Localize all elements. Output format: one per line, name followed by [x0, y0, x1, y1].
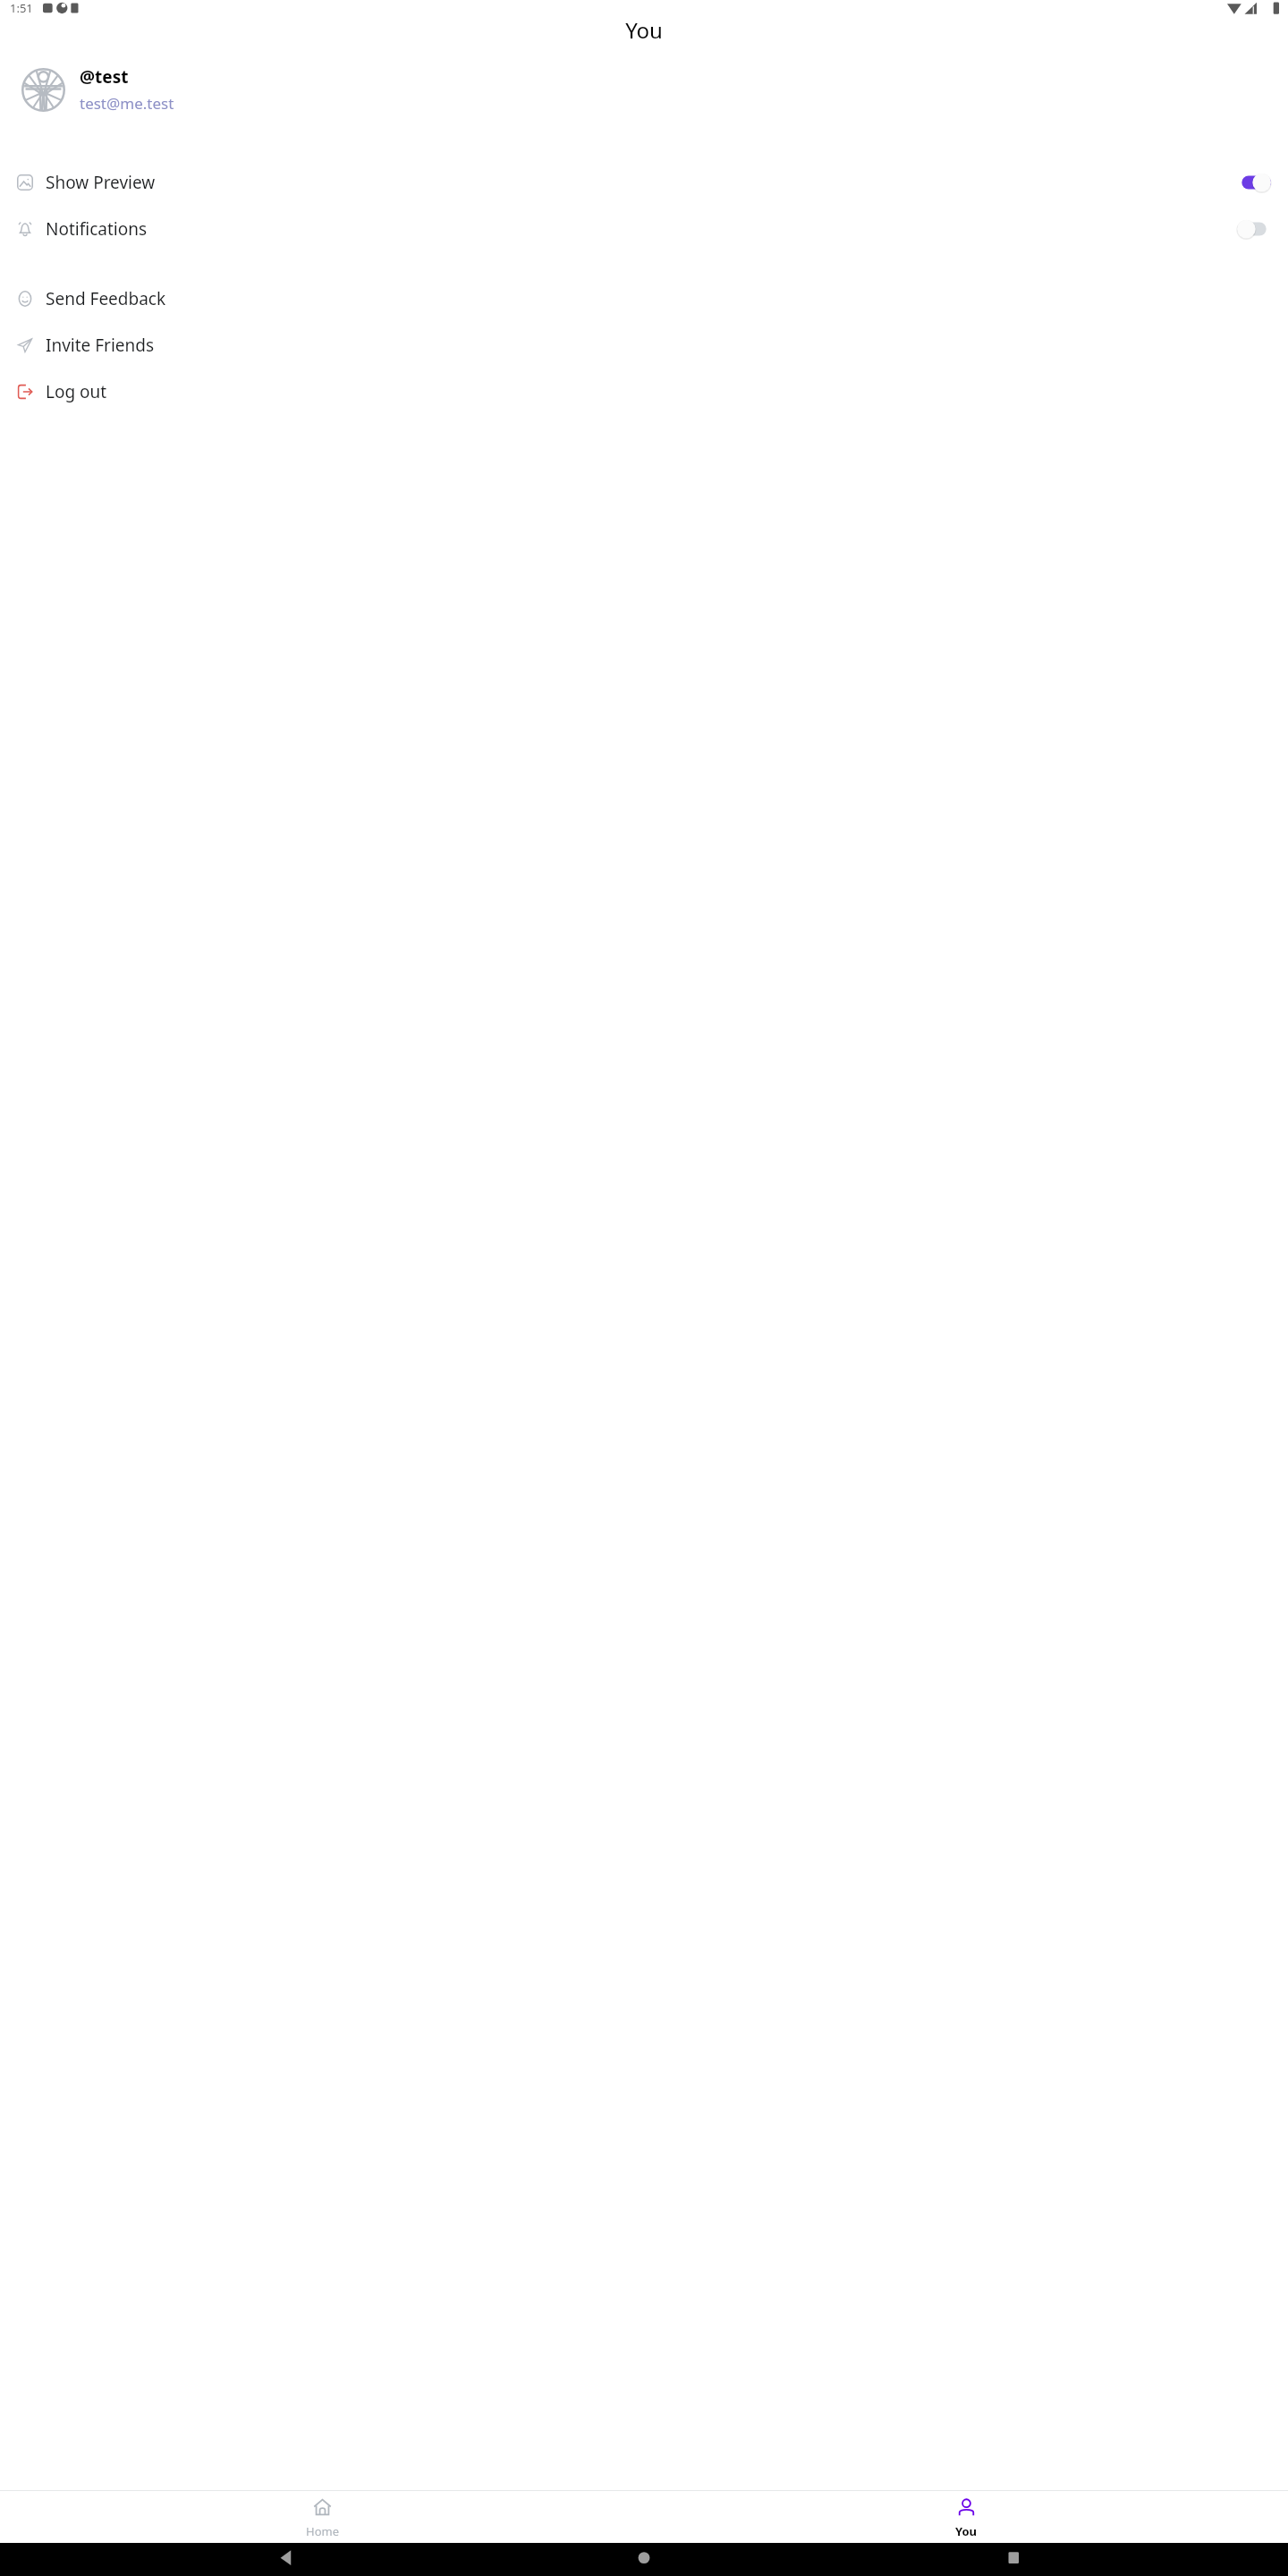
- staticText: You: [955, 2523, 978, 2539]
- button[interactable]: @test: [0, 58, 1288, 121]
- button[interactable]: Show preview: [0, 159, 1288, 206]
- button[interactable]: Home: [0, 2491, 644, 2543]
- other: Log out: [17, 384, 33, 400]
- staticText: Send Feedback: [46, 287, 166, 310]
- staticText: Invite Friends: [46, 334, 155, 357]
- button[interactable]: Off: [1237, 219, 1271, 239]
- staticText: test@me.test: [80, 93, 174, 114]
- staticText: Log out: [46, 380, 107, 403]
- staticText: 1:51: [10, 0, 33, 15]
- button[interactable]: Log out: [0, 369, 1288, 415]
- button[interactable]: Invite friends: [0, 322, 1288, 369]
- button[interactable]: Send feedback: [0, 275, 1288, 322]
- button[interactable]: You: [644, 2491, 1288, 2543]
- other: Invite friends: [17, 337, 33, 353]
- staticText: Show Preview: [46, 171, 1237, 194]
- other: Notifications: [17, 221, 33, 237]
- button[interactable]: Notifications: [0, 206, 1288, 252]
- staticText: You: [625, 15, 663, 42]
- staticText: Home: [306, 2523, 339, 2539]
- other: Show preview: [17, 174, 33, 191]
- button[interactable]: On: [1237, 173, 1271, 192]
- staticText: Notifications: [46, 217, 1237, 241]
- staticText: @test: [80, 65, 129, 89]
- other: Send feedback: [17, 291, 33, 307]
